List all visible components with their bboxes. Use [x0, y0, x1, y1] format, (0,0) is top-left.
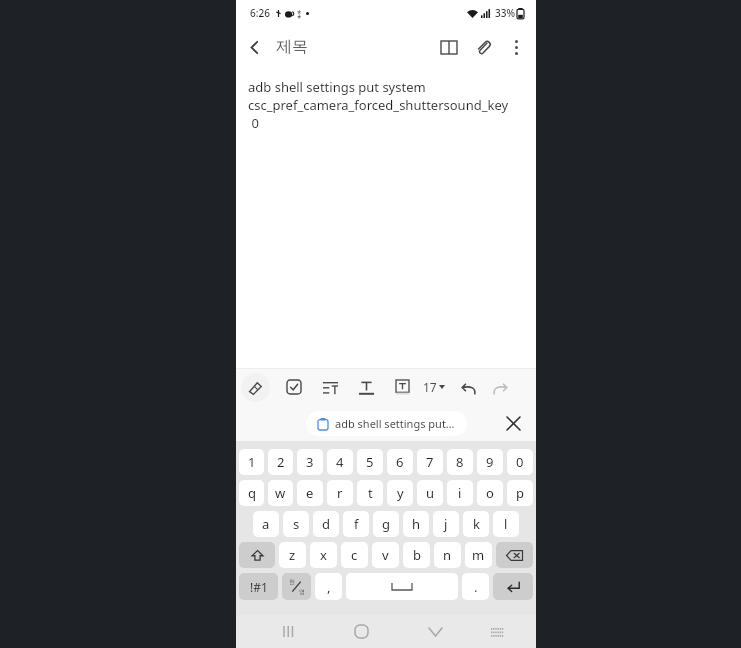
staticText: s — [293, 515, 300, 533]
button[interactable]: Paragraph style — [317, 374, 343, 400]
button[interactable]: Checklist — [281, 374, 307, 400]
staticText: 3 — [306, 453, 314, 471]
button[interactable]: Undo — [455, 374, 481, 400]
button[interactable]: e — [297, 480, 323, 506]
button[interactable]: Handwriting — [241, 373, 270, 402]
button[interactable]: Reading mode — [432, 30, 466, 64]
staticText: , — [327, 578, 331, 596]
button[interactable]: b — [403, 542, 430, 568]
button[interactable]: Text style — [353, 374, 379, 400]
staticText: 9 — [486, 453, 494, 471]
staticText: w — [275, 484, 286, 502]
button[interactable]: More options — [500, 31, 532, 63]
button[interactable]: Enter — [493, 573, 533, 600]
staticText: u — [426, 484, 435, 502]
button[interactable]: j — [433, 511, 459, 537]
staticText: k — [473, 515, 480, 533]
staticText: l — [504, 515, 508, 533]
button[interactable]: Text box — [389, 374, 415, 400]
staticText: g — [382, 515, 390, 533]
staticText: 영 — [299, 588, 305, 596]
staticText: c — [351, 546, 358, 564]
button[interactable]: 9 — [477, 449, 503, 475]
button[interactable]: k — [463, 511, 489, 537]
staticText: q — [248, 484, 256, 502]
button[interactable]: o — [477, 480, 503, 506]
button[interactable]: h — [403, 511, 429, 537]
button[interactable]: d — [313, 511, 339, 537]
button[interactable]: Space — [346, 573, 458, 600]
staticText: e — [306, 484, 314, 502]
button[interactable]: q — [239, 480, 264, 506]
button[interactable]: Recents — [271, 615, 305, 648]
button[interactable]: t — [357, 480, 383, 506]
button[interactable]: Keyboard settings — [482, 617, 512, 647]
button[interactable]: r — [327, 480, 353, 506]
button[interactable]: p — [507, 480, 533, 506]
button[interactable]: 17 — [423, 379, 445, 395]
button[interactable]: , — [315, 573, 342, 600]
button[interactable]: a — [253, 511, 279, 537]
button[interactable]: 6 — [387, 449, 413, 475]
button[interactable]: c — [341, 542, 368, 568]
button[interactable]: g — [373, 511, 399, 537]
staticText: a — [262, 515, 270, 533]
button[interactable]: adb shell settings put… — [306, 411, 467, 436]
staticText: 6:26 — [250, 6, 270, 20]
staticText: csc_pref_camera_forced_shuttersound_key — [248, 96, 509, 114]
staticText: n — [443, 546, 452, 564]
staticText: 17 — [423, 379, 437, 395]
staticText: d — [322, 515, 330, 533]
button[interactable]: 3 — [297, 449, 323, 475]
staticText: ⁑ — [297, 8, 302, 19]
staticText: 5 — [366, 453, 374, 471]
button[interactable]: Redo — [487, 374, 513, 400]
staticText: 한 — [289, 578, 295, 586]
button[interactable]: 8 — [447, 449, 473, 475]
button[interactable]: z — [279, 542, 306, 568]
button[interactable]: 5 — [357, 449, 383, 475]
staticText: . — [474, 578, 478, 596]
staticText: 8 — [456, 453, 464, 471]
staticText: h — [412, 515, 421, 533]
button[interactable]: 1 — [239, 449, 264, 475]
staticText: m — [472, 546, 485, 564]
staticText: 0 — [248, 114, 259, 132]
staticText: p — [516, 484, 524, 502]
button[interactable]: m — [465, 542, 492, 568]
button[interactable]: s — [283, 511, 309, 537]
button[interactable]: . — [462, 573, 489, 600]
button[interactable]: 0 — [507, 449, 533, 475]
button[interactable]: y — [387, 480, 413, 506]
button[interactable]: 2 — [268, 449, 293, 475]
button[interactable]: 4 — [327, 449, 353, 475]
button[interactable]: Hide keyboard — [418, 615, 452, 648]
staticText: 4 — [336, 453, 344, 471]
staticText: 2 — [277, 453, 285, 471]
button[interactable]: !#1 — [239, 573, 278, 600]
staticText: t — [368, 484, 373, 502]
button[interactable]: u — [417, 480, 443, 506]
button[interactable]: 7 — [417, 449, 443, 475]
button[interactable]: Attach — [466, 30, 500, 64]
button[interactable]: i — [447, 480, 473, 506]
button[interactable]: Home — [344, 615, 378, 648]
button[interactable]: x — [310, 542, 337, 568]
button[interactable]: w — [268, 480, 293, 506]
staticText: x — [320, 546, 327, 564]
staticText: 6 — [396, 453, 404, 471]
staticText: b — [413, 546, 421, 564]
staticText: z — [289, 546, 296, 564]
staticText: 7 — [426, 453, 434, 471]
button[interactable]: n — [434, 542, 461, 568]
staticText: 1 — [248, 453, 256, 471]
button[interactable]: Back — [236, 29, 272, 65]
button[interactable]: Backspace — [496, 542, 533, 568]
button[interactable]: Shift — [239, 542, 275, 568]
staticText: v — [382, 546, 389, 564]
button[interactable]: v — [372, 542, 399, 568]
button[interactable]: Language — [282, 573, 311, 600]
button[interactable]: f — [343, 511, 369, 537]
button[interactable]: l — [493, 511, 519, 537]
button[interactable]: Close — [500, 410, 526, 436]
